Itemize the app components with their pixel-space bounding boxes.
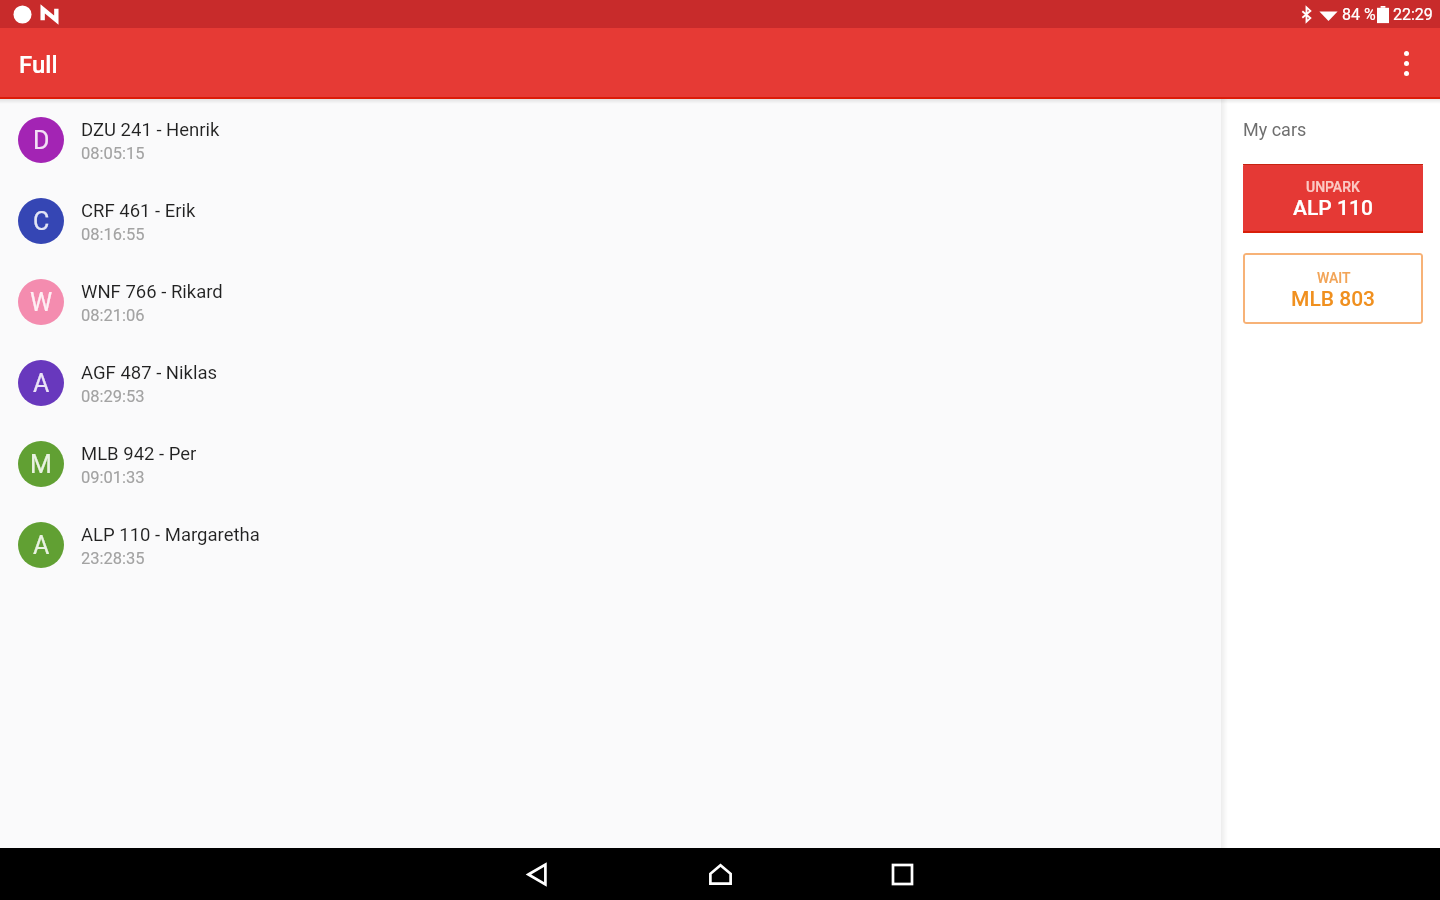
button[interactable]: D bbox=[0, 99, 1221, 180]
staticText: DZU 241 - Henrik bbox=[81, 119, 220, 141]
staticText: 09:01:33 bbox=[81, 468, 145, 487]
button[interactable]: W bbox=[0, 261, 1221, 342]
staticText: 08:21:06 bbox=[81, 306, 145, 325]
button[interactable]: A bbox=[0, 504, 1221, 585]
button[interactable]: Recent apps bbox=[870, 848, 934, 900]
button[interactable]: C bbox=[0, 180, 1221, 261]
staticText: M bbox=[30, 450, 52, 479]
button[interactable]: M bbox=[0, 423, 1221, 504]
staticText: 22:29 bbox=[1393, 5, 1433, 24]
staticText: A bbox=[33, 531, 50, 560]
staticText: UNPARK bbox=[1306, 179, 1360, 195]
staticText: 08:05:15 bbox=[81, 144, 145, 163]
staticText: Full bbox=[19, 51, 58, 79]
staticText: 84 % bbox=[1342, 5, 1376, 24]
button[interactable]: Back bbox=[506, 848, 570, 900]
staticText: D bbox=[33, 126, 50, 155]
staticText: CRF 461 - Erik bbox=[81, 200, 196, 222]
staticText: WNF 766 - Rikard bbox=[81, 281, 223, 303]
staticText: My cars bbox=[1243, 119, 1307, 140]
staticText: A bbox=[33, 369, 50, 398]
button[interactable]: UNPARK bbox=[1243, 164, 1423, 233]
staticText: 08:29:53 bbox=[81, 387, 145, 406]
staticText: 23:28:35 bbox=[81, 549, 145, 568]
staticText: ALP 110 bbox=[1293, 196, 1373, 221]
button[interactable]: WAIT bbox=[1243, 253, 1423, 324]
staticText: AGF 487 - Niklas bbox=[81, 362, 218, 384]
staticText: C bbox=[33, 207, 50, 236]
staticText: WAIT bbox=[1317, 270, 1351, 286]
staticText: ALP 110 - Margaretha bbox=[81, 524, 260, 546]
button[interactable]: A bbox=[0, 342, 1221, 423]
staticText: W bbox=[30, 288, 53, 317]
button[interactable]: Home bbox=[688, 848, 752, 900]
staticText: MLB 942 - Per bbox=[81, 443, 197, 465]
staticText: 08:16:55 bbox=[81, 225, 145, 244]
button[interactable]: More options bbox=[1382, 39, 1430, 87]
staticText: MLB 803 bbox=[1291, 287, 1376, 312]
